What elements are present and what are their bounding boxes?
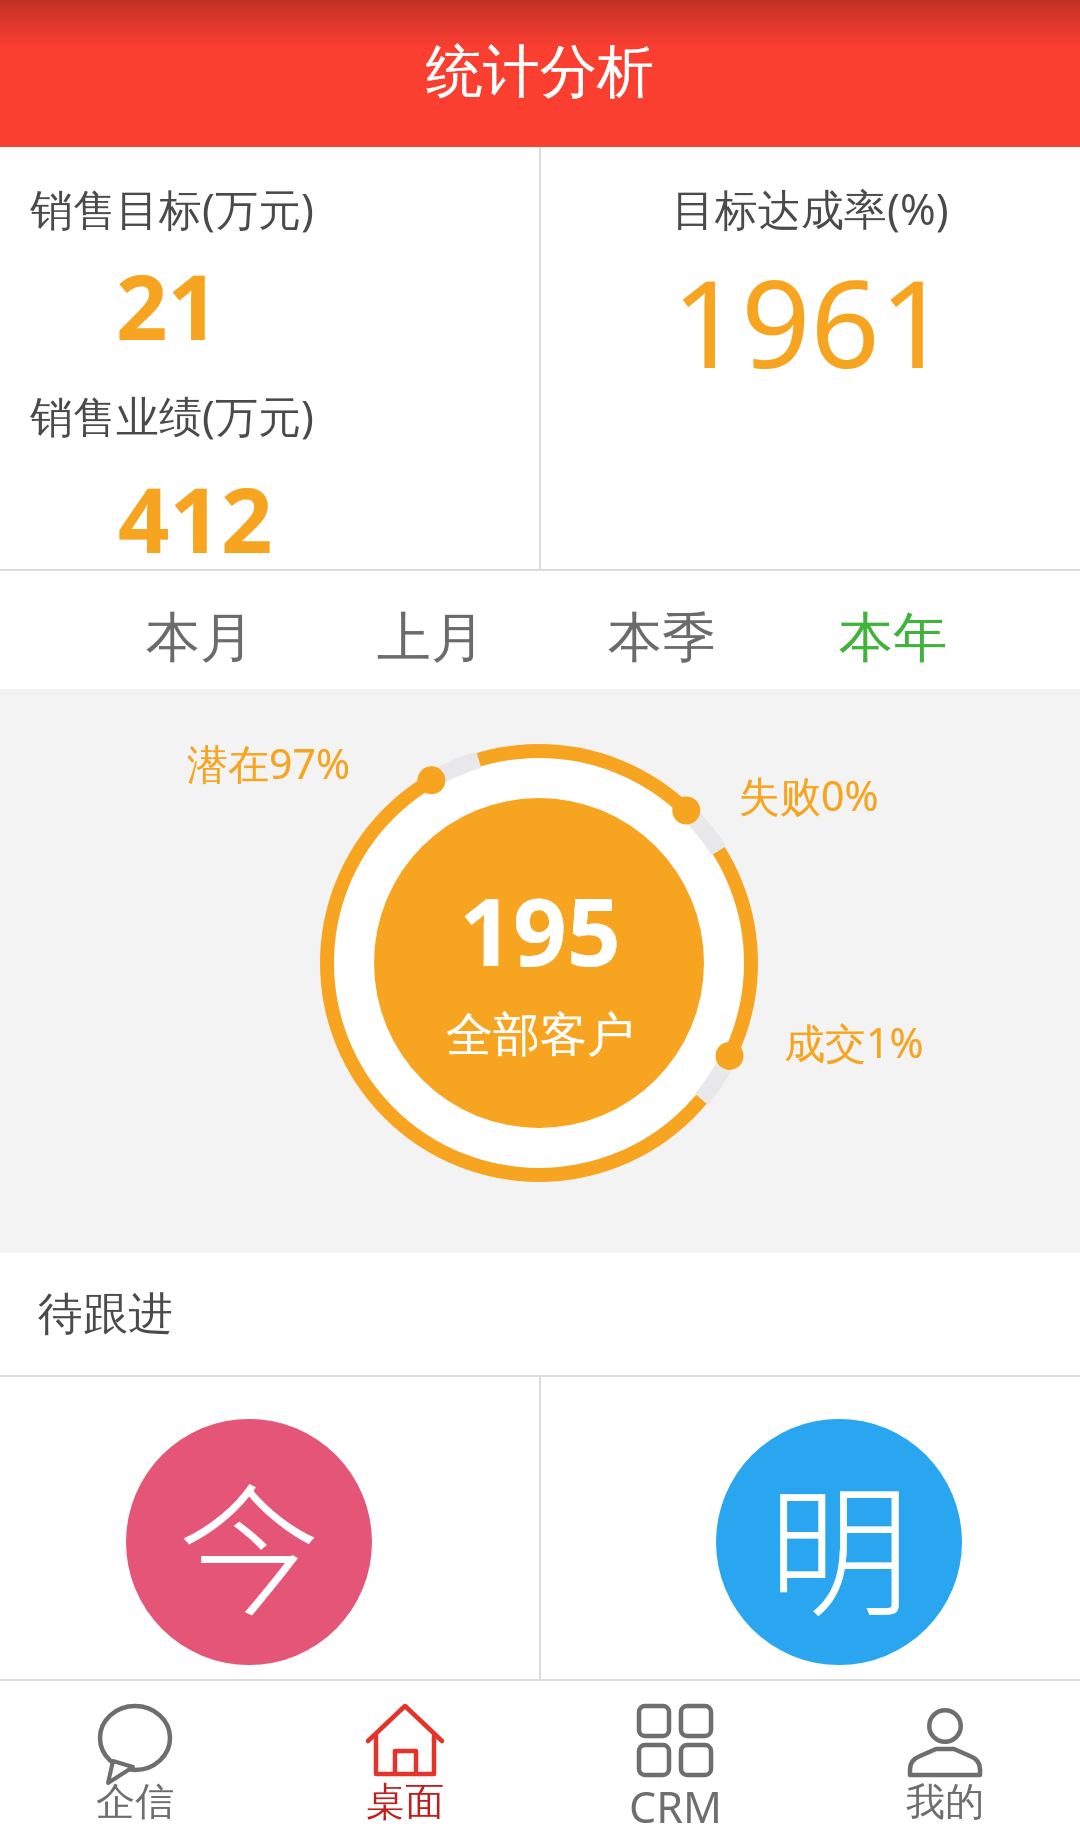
button[interactable]: 明 xyxy=(541,1377,1080,1679)
staticText: 今 xyxy=(178,1439,320,1645)
staticText: 目标达成率(%) xyxy=(672,179,949,238)
staticText: 本年 xyxy=(839,604,947,672)
staticText: 21 xyxy=(116,244,219,367)
staticText: 上月 xyxy=(377,604,485,672)
staticText: 企信 xyxy=(96,1777,174,1826)
button[interactable]: 我的 xyxy=(810,1681,1080,1844)
staticText: 销售目标(万元) xyxy=(30,179,314,238)
button[interactable]: 上月 xyxy=(377,604,485,672)
button[interactable]: 今 xyxy=(0,1377,539,1679)
staticText: 412 xyxy=(118,457,273,569)
button[interactable]: 企信 xyxy=(0,1681,270,1844)
button[interactable]: 桌面 xyxy=(270,1681,540,1844)
button[interactable]: 待跟进 xyxy=(0,1253,1080,1375)
staticText: 失败0% xyxy=(739,767,879,823)
staticText: CRM xyxy=(629,1777,722,1836)
staticText: 本月 xyxy=(146,604,254,672)
staticText: 1961 xyxy=(672,239,949,404)
staticText: 全部客户 xyxy=(0,1006,1080,1065)
staticText: 桌面 xyxy=(366,1777,444,1826)
button[interactable]: CRM xyxy=(540,1681,810,1844)
button[interactable]: 本季 xyxy=(608,604,716,672)
staticText: 统计分析 xyxy=(426,36,654,108)
staticText: 成交1% xyxy=(784,1014,924,1070)
staticText: 明 xyxy=(768,1439,910,1645)
button[interactable]: 本月 xyxy=(146,604,254,672)
staticText: 待跟进 xyxy=(38,1286,173,1343)
staticText: 195 xyxy=(0,866,1080,994)
staticText: 销售业绩(万元) xyxy=(30,386,314,445)
staticText: 潜在97% xyxy=(187,735,350,791)
staticText: 我的 xyxy=(906,1777,984,1826)
button[interactable]: 本年 xyxy=(839,604,947,672)
staticText: 本季 xyxy=(608,604,716,672)
